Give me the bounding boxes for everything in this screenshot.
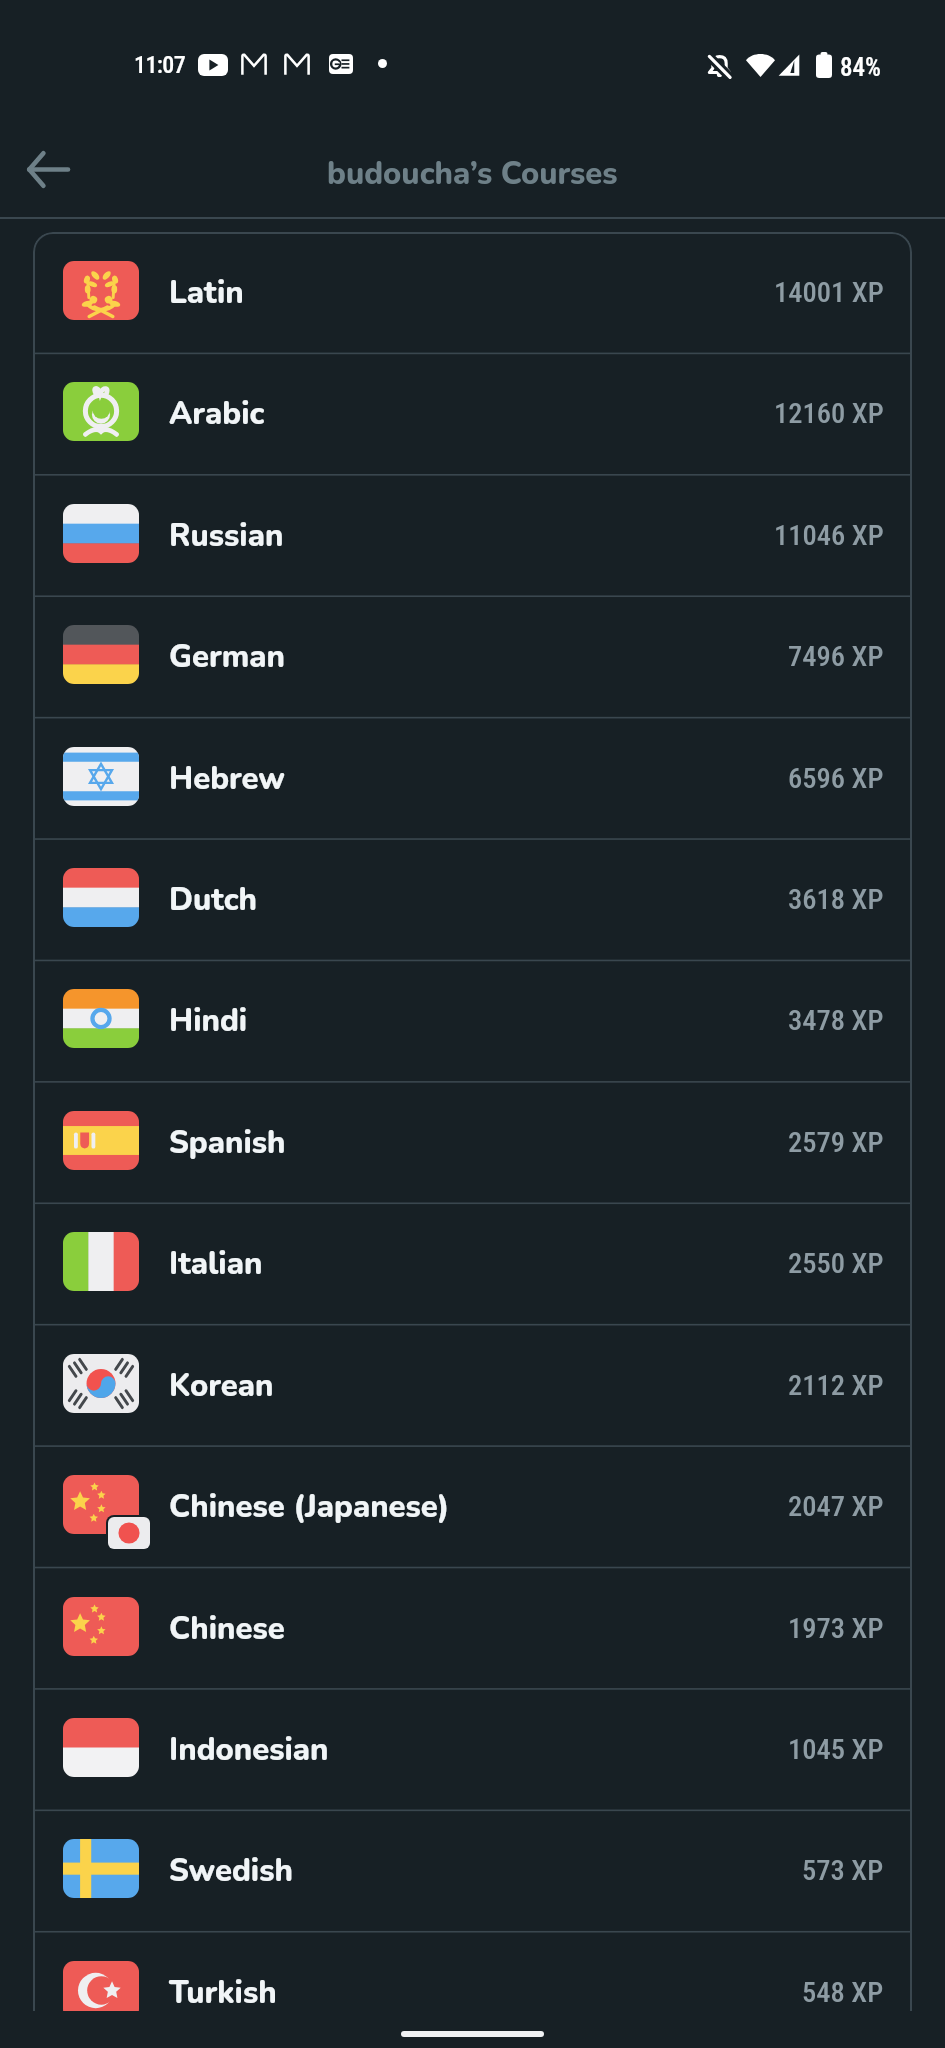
button[interactable]: Hebrew: [33, 718, 912, 839]
staticText: 3618 XP: [788, 883, 884, 916]
staticText: 2047 XP: [788, 1490, 884, 1523]
button[interactable]: Indonesian: [33, 1689, 912, 1810]
staticText: 84%: [840, 53, 881, 82]
staticText: 548 XP: [802, 1976, 884, 2009]
staticText: Swedish: [169, 1850, 293, 1892]
staticText: Italian: [169, 1243, 263, 1285]
button[interactable]: German: [33, 596, 912, 717]
button[interactable]: Italian: [33, 1203, 912, 1324]
staticText: Dutch: [169, 879, 257, 921]
button[interactable]: Hindi: [33, 960, 912, 1081]
staticText: 7496 XP: [788, 640, 884, 673]
staticText: Arabic: [169, 393, 265, 435]
button[interactable]: Dutch: [33, 839, 912, 960]
staticText: 1045 XP: [788, 1733, 884, 1766]
button[interactable]: Korean: [33, 1325, 912, 1446]
staticText: Korean: [169, 1365, 274, 1407]
staticText: 12160 XP: [774, 397, 884, 430]
button[interactable]: Back: [12, 134, 82, 204]
button[interactable]: Spanish: [33, 1082, 912, 1203]
staticText: 3478 XP: [788, 1004, 884, 1037]
staticText: Hindi: [169, 1000, 248, 1042]
staticText: 1973 XP: [788, 1612, 884, 1645]
staticText: 6596 XP: [788, 762, 884, 795]
staticText: Chinese: [169, 1608, 285, 1650]
staticText: 11:07: [134, 51, 186, 79]
button[interactable]: Arabic: [33, 353, 912, 474]
staticText: 2112 XP: [788, 1369, 884, 1402]
staticText: Spanish: [169, 1122, 286, 1164]
staticText: 2579 XP: [788, 1126, 884, 1159]
button[interactable]: Chinese (Japanese): [33, 1446, 912, 1567]
staticText: budoucha’s Courses: [327, 153, 618, 195]
staticText: German: [169, 636, 286, 678]
staticText: Indonesian: [169, 1729, 329, 1771]
staticText: Hebrew: [169, 758, 286, 800]
button[interactable]: Chinese: [33, 1568, 912, 1689]
button[interactable]: Latin: [33, 232, 912, 353]
staticText: 573 XP: [802, 1854, 884, 1887]
button[interactable]: Swedish: [33, 1810, 912, 1931]
staticText: 14001 XP: [774, 276, 884, 309]
staticText: 2550 XP: [788, 1247, 884, 1280]
staticText: 11046 XP: [774, 519, 884, 552]
staticText: Russian: [169, 515, 284, 557]
button[interactable]: Turkish: [33, 1932, 912, 2011]
button[interactable]: Russian: [33, 475, 912, 596]
staticText: Latin: [169, 272, 244, 314]
staticText: Chinese (Japanese): [169, 1486, 450, 1528]
staticText: Turkish: [169, 1972, 277, 2011]
